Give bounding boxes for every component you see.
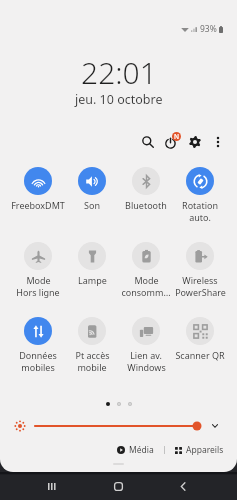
button[interactable]: Lampe [65,235,119,286]
staticText: Données [19,349,57,361]
staticText: Bluetooth [125,199,167,211]
staticText: Rotation [182,199,218,211]
button[interactable]: Mode [119,235,173,298]
button[interactable]: Search [136,130,160,154]
staticText: Mode [134,274,159,286]
button[interactable]: Pt accès [65,310,119,373]
button[interactable]: Son [65,160,119,211]
button[interactable]: Recents [39,472,65,500]
staticText: Appareils [186,444,224,456]
staticText: Mode [26,274,51,286]
staticText: auto. [189,211,211,223]
staticText: 22:01 [81,52,157,93]
staticText: Lampe [78,274,107,286]
button[interactable]: More options [206,130,230,154]
button[interactable]: Scanner QR [173,310,227,361]
staticText: 93% [200,23,217,35]
staticText: jeu. 10 octobre [75,91,163,108]
button[interactable]: Settings [183,130,207,154]
button[interactable]: Rotation [173,160,227,223]
button[interactable]: Lien av. [119,310,173,373]
staticText: N [174,132,180,141]
staticText: consomm… [121,286,171,298]
staticText: Windows [127,361,166,373]
staticText: PowerShare [175,286,226,298]
staticText: Scanner QR [175,349,225,361]
button[interactable]: Power off [159,130,183,154]
button[interactable]: Back [170,472,196,500]
button[interactable]: Bluetooth [119,160,173,211]
button[interactable]: Brightness [33,419,205,433]
button[interactable]: Wireless [173,235,227,298]
button[interactable]: Mode [11,235,65,298]
button[interactable]: Expand [206,417,224,435]
staticText: Hors ligne [16,286,60,298]
button[interactable]: Média [115,444,156,456]
staticText: mobile [77,361,107,373]
button[interactable]: Home [105,472,131,500]
staticText: Média [129,444,154,456]
staticText: Lien av. [130,349,162,361]
staticText: mobiles [21,361,55,373]
staticText: FreeboxDMT [11,199,65,211]
button[interactable]: FreeboxDMT [11,160,65,211]
button[interactable]: Données [11,310,65,373]
staticText: Son [84,199,100,211]
button[interactable]: Appareils [173,444,226,456]
staticText: Pt accès [75,349,110,361]
staticText: Wireless [182,274,218,286]
